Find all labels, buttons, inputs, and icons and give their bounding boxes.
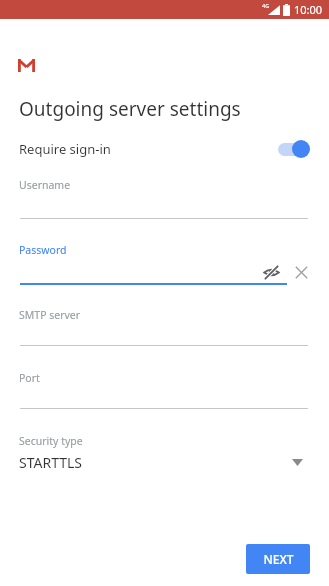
button[interactable]: Require sign-in <box>0 135 329 163</box>
staticText: 4G <box>262 2 270 9</box>
staticText: STARTTLS <box>19 453 83 472</box>
staticText: NEXT <box>263 551 294 567</box>
button[interactable]: Hide password <box>258 259 284 285</box>
staticText: SMTP server <box>19 308 81 322</box>
button[interactable]: SMTP server <box>0 302 329 351</box>
staticText: 10:00 <box>294 2 323 17</box>
staticText: Require sign-in <box>19 140 111 158</box>
staticText: Outgoing server settings <box>19 96 241 122</box>
staticText: Security type <box>19 434 83 448</box>
button[interactable]: Require sign-in toggle <box>276 139 312 159</box>
button[interactable]: Security type <box>0 430 329 478</box>
button[interactable]: Port <box>0 365 329 414</box>
button[interactable]: Password <box>0 237 329 289</box>
button[interactable]: Clear <box>288 259 314 285</box>
button[interactable]: NEXT <box>246 544 310 574</box>
staticText: Password <box>19 243 67 257</box>
staticText: Username <box>19 178 71 192</box>
staticText: Port <box>19 371 40 385</box>
button[interactable]: Username <box>0 172 329 224</box>
